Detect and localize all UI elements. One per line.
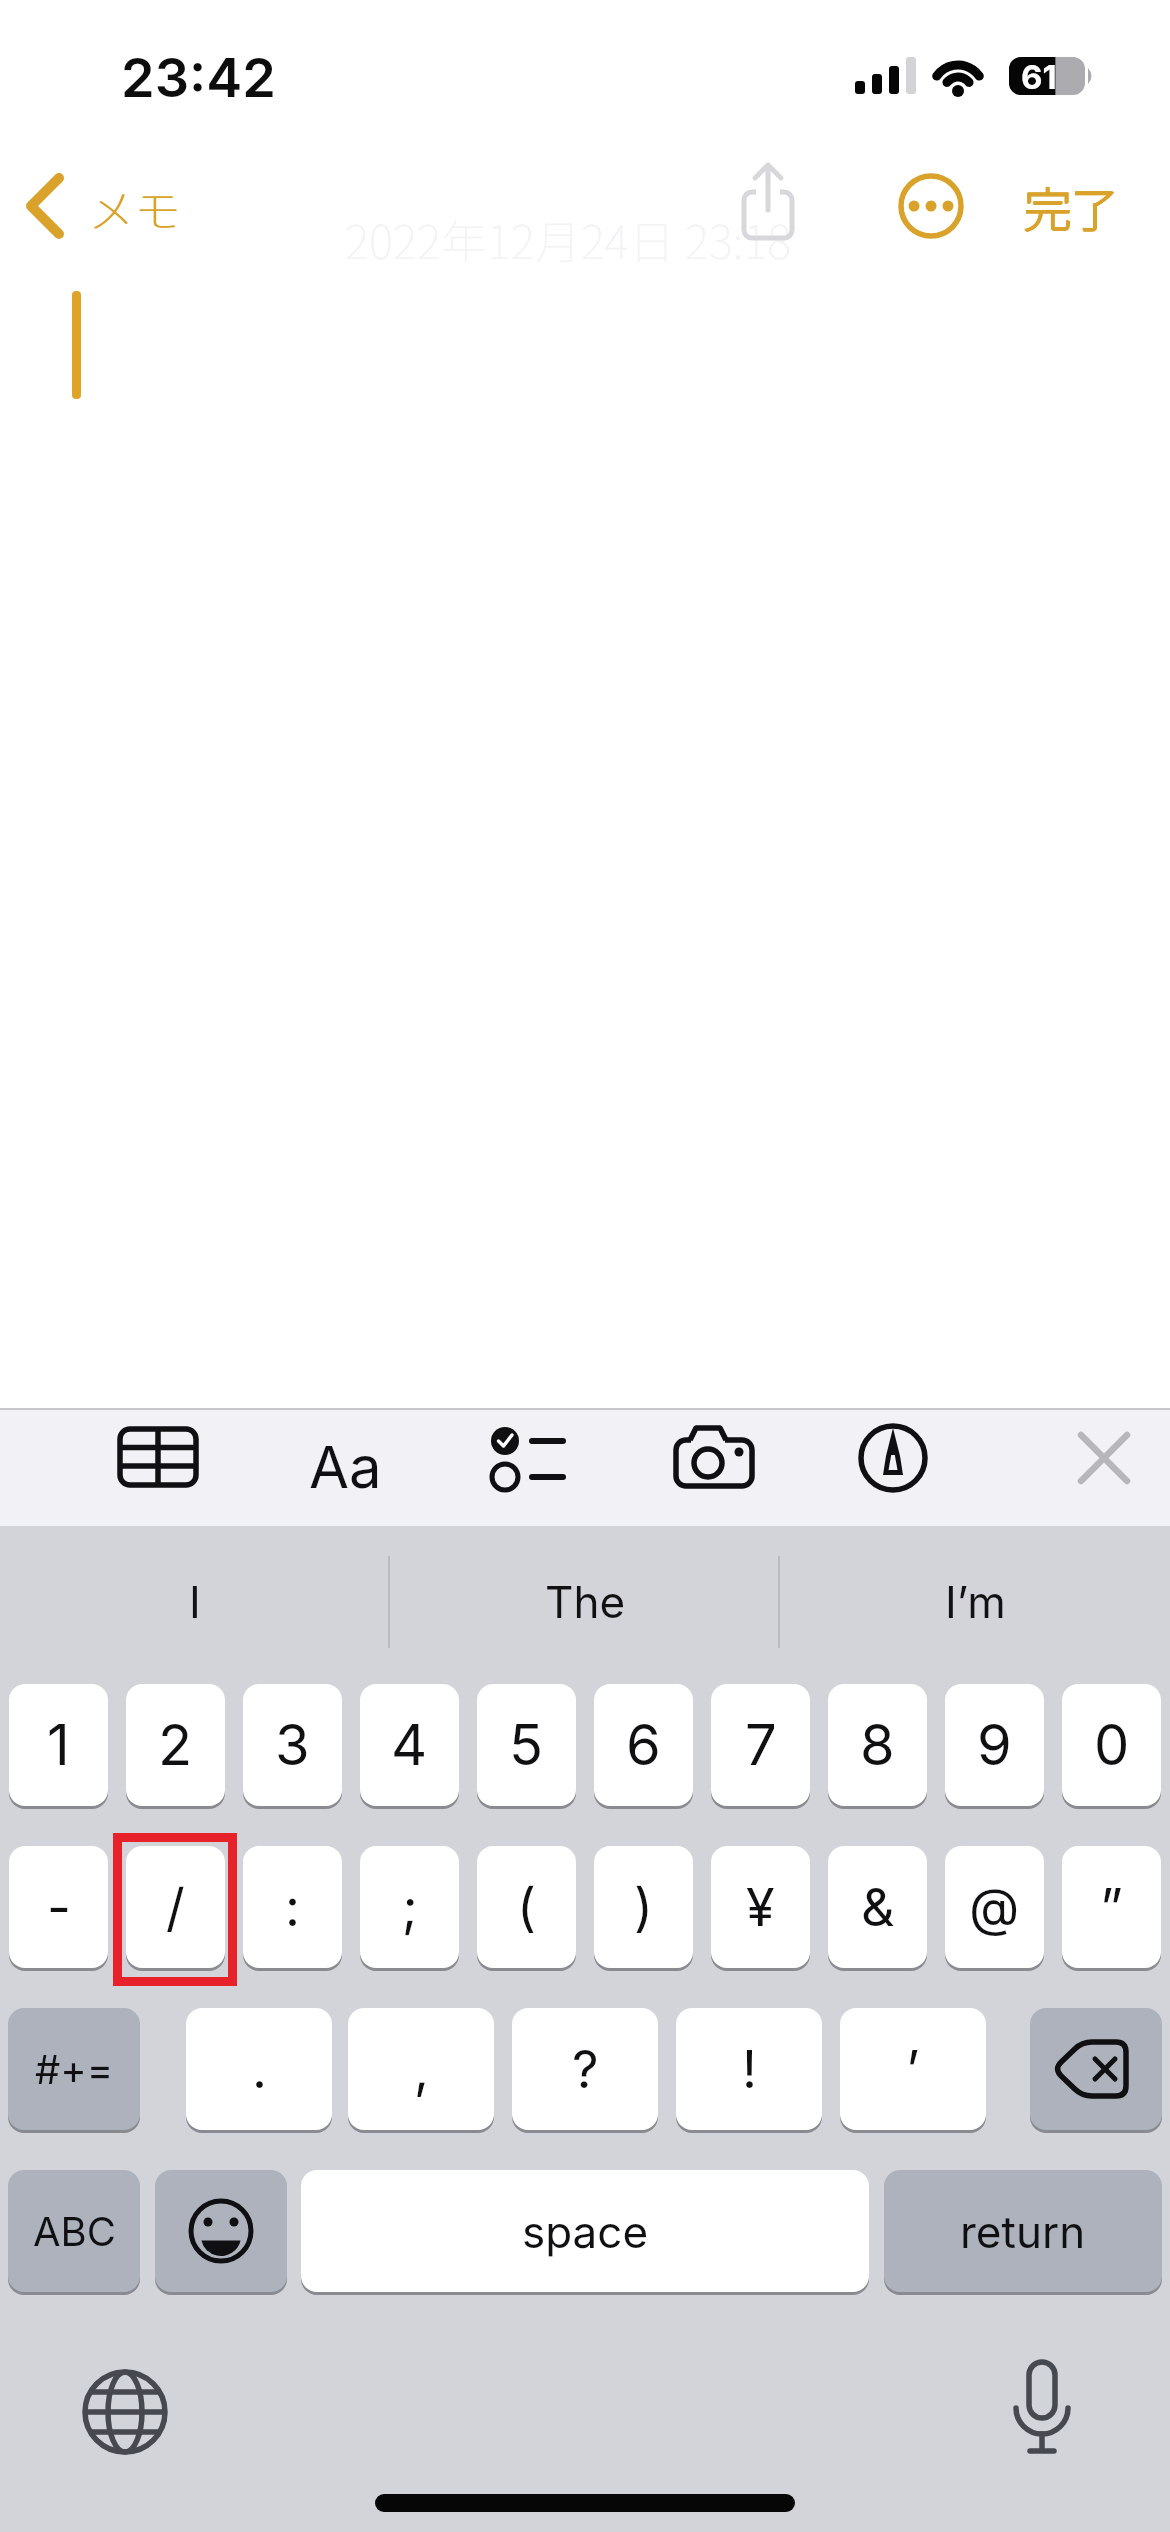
staticText: メモ (88, 175, 180, 242)
button[interactable]: ¥ (711, 1846, 810, 1968)
button[interactable]: ’ (840, 2008, 986, 2130)
button[interactable]: space (301, 2170, 869, 2292)
button[interactable]: Aa (295, 1412, 395, 1522)
staticText: #+= (35, 2045, 114, 2093)
staticText: 完了 (1024, 172, 1118, 240)
button[interactable] (660, 1412, 770, 1522)
staticText: 7 (745, 1711, 777, 1779)
staticText: I (189, 1575, 201, 1628)
staticText: ( (517, 1876, 536, 1939)
button[interactable] (1056, 1408, 1152, 1508)
staticText: 2 (158, 1711, 193, 1779)
staticText: ” (1100, 1876, 1123, 1939)
staticText: ’ (906, 2038, 920, 2101)
staticText: space (522, 2205, 649, 2258)
button[interactable]: ABC (8, 2170, 140, 2292)
staticText: 23:42 (121, 45, 276, 110)
button[interactable]: : (243, 1846, 342, 1968)
button[interactable] (845, 1408, 941, 1508)
staticText: ¥ (746, 1876, 775, 1939)
button[interactable] (883, 158, 979, 254)
button[interactable]: @ (945, 1846, 1044, 1968)
button[interactable]: 1 (9, 1684, 108, 1806)
button[interactable]: The (400, 1548, 770, 1654)
staticText: : (285, 1876, 300, 1939)
button[interactable]: メモ (16, 156, 196, 256)
button[interactable]: - (9, 1846, 108, 1968)
button[interactable] (990, 2352, 1095, 2467)
button[interactable]: 2 (126, 1684, 225, 1806)
button[interactable]: 8 (828, 1684, 927, 1806)
button[interactable]: #+= (8, 2008, 140, 2130)
staticText: & (861, 1876, 895, 1939)
staticText: 3 (275, 1711, 310, 1779)
staticText: , (414, 2038, 429, 2101)
button[interactable]: ” (1062, 1846, 1161, 1968)
button[interactable]: 9 (945, 1684, 1044, 1806)
staticText: メモ (89, 175, 181, 242)
button[interactable]: ; (360, 1846, 459, 1968)
staticText: Aa (309, 1432, 382, 1502)
button[interactable]: . (186, 2008, 332, 2130)
button[interactable]: ? (512, 2008, 658, 2130)
staticText: 8 (860, 1711, 895, 1779)
button[interactable]: 6 (594, 1684, 693, 1806)
staticText: - (47, 1876, 71, 1939)
button[interactable]: I (10, 1548, 380, 1654)
staticText: 1 (47, 1711, 70, 1779)
button[interactable]: , (348, 2008, 494, 2130)
staticText: 完了 (1024, 173, 1118, 241)
button[interactable]: ( (477, 1846, 576, 1968)
button[interactable]: 7 (711, 1684, 810, 1806)
staticText: I’m (945, 1575, 1006, 1628)
staticText: ) (634, 1876, 653, 1939)
staticText: 4 (391, 1711, 428, 1779)
button[interactable]: 3 (243, 1684, 342, 1806)
staticText: . (252, 2038, 267, 2101)
button[interactable]: ) (594, 1846, 693, 1968)
staticText: 6 (626, 1711, 661, 1779)
staticText: 61 (1021, 57, 1057, 97)
button[interactable]: 0 (1062, 1684, 1161, 1806)
button[interactable]: & (828, 1846, 927, 1968)
staticText: return (960, 2205, 1086, 2258)
staticText: 0 (1094, 1711, 1130, 1779)
button[interactable]: 5 (477, 1684, 576, 1806)
staticText: ABC (33, 2207, 116, 2255)
staticText: 完了 (1025, 172, 1119, 240)
staticText: The (545, 1575, 626, 1628)
staticText: 5 (509, 1711, 544, 1779)
button[interactable]: 4 (360, 1684, 459, 1806)
staticText: / (166, 1876, 185, 1939)
button[interactable]: ! (676, 2008, 822, 2130)
button[interactable] (108, 1412, 208, 1522)
button[interactable]: I’m (790, 1548, 1160, 1654)
staticText: ! (742, 2038, 757, 2101)
staticText: @ (969, 1876, 1020, 1939)
button[interactable] (75, 2362, 175, 2462)
staticText: ; (402, 1876, 418, 1939)
button[interactable] (455, 1412, 575, 1522)
button[interactable] (1030, 2008, 1162, 2130)
button[interactable]: / (126, 1846, 225, 1968)
staticText: 2022年12月24日 23:18 (345, 206, 792, 273)
button[interactable]: 完了 (1006, 158, 1136, 254)
button[interactable]: return (884, 2170, 1162, 2292)
staticText: ? (572, 2038, 599, 2101)
button[interactable] (728, 156, 824, 256)
button[interactable] (155, 2170, 287, 2292)
staticText: 9 (977, 1711, 1012, 1779)
